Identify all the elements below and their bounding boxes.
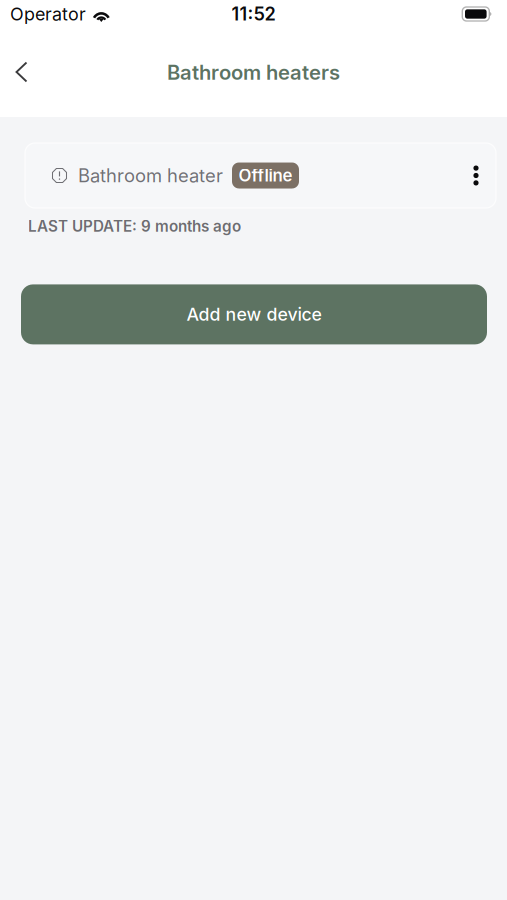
staticText: LAST UPDATE: 9 months ago [28, 217, 241, 235]
staticText: Bathroom heater [78, 164, 223, 187]
staticText: Offline [238, 165, 292, 186]
button[interactable]: Bathroom heater [25, 143, 456, 208]
staticText: Operator [10, 3, 86, 25]
staticText: 11:52 [231, 3, 275, 25]
button[interactable]: More options [456, 143, 496, 208]
staticText: Bathroom heaters [167, 60, 340, 85]
button[interactable]: Add new device [21, 284, 487, 344]
button[interactable]: Back [0, 28, 44, 117]
staticText: Add new device [186, 304, 321, 325]
